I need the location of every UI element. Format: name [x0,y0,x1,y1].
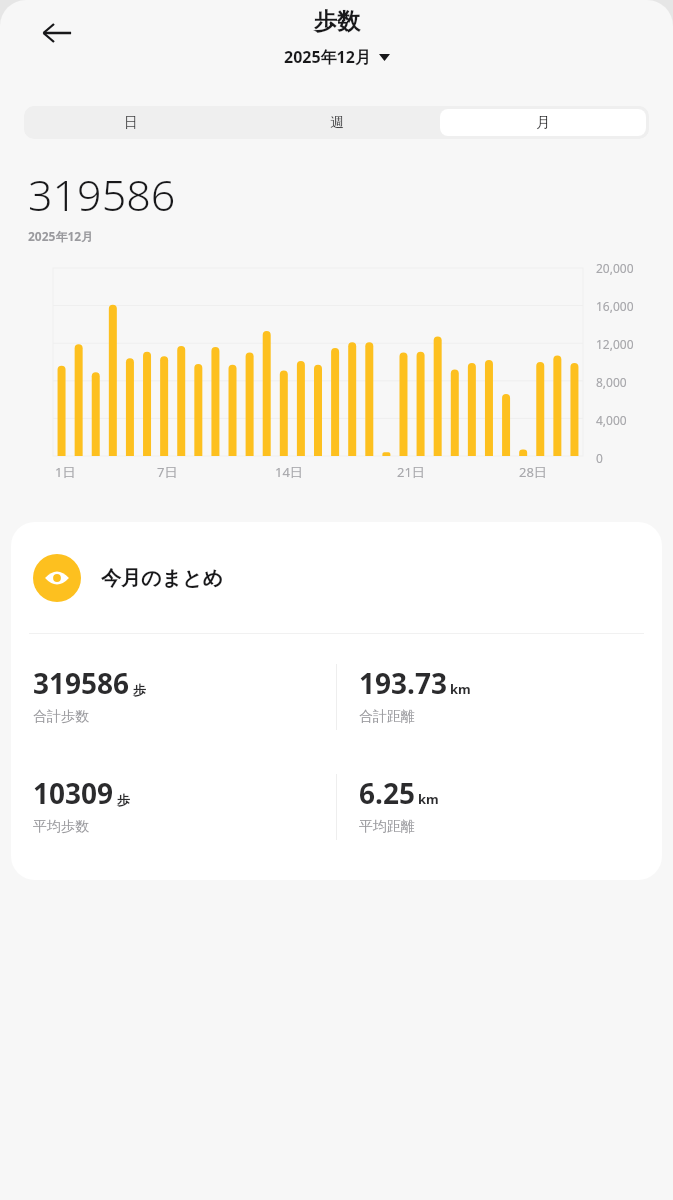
staticText: 今月のまとめ [101,566,223,591]
staticText: 歩 [117,792,130,808]
staticText: 2025年12月 [284,46,371,68]
staticText: 319586 [28,165,176,224]
staticText: 4,000 [596,412,627,428]
staticText: 1日 [55,463,76,481]
staticText: 月 [536,114,550,132]
button[interactable]: 週 [234,109,440,136]
staticText: 2025年12月 [28,228,94,244]
staticText: 14日 [275,463,303,481]
staticText: 歩数 [314,7,360,36]
staticText: 平均距離 [359,818,415,836]
button[interactable]: 日 [27,109,234,136]
staticText: 193.73 [359,664,447,702]
staticText: 10309 [33,774,114,812]
staticText: 合計距離 [359,708,415,726]
staticText: km [418,790,439,808]
staticText: 平均歩数 [33,818,89,836]
staticText: 20,000 [596,260,634,276]
staticText: 7日 [157,463,178,481]
button[interactable]: 今月のまとめ [11,522,662,880]
staticText: 週 [330,114,344,132]
staticText: 319586 [33,664,130,702]
staticText: 合計歩数 [33,708,89,726]
staticText: 歩 [133,682,146,698]
staticText: 12,000 [596,336,634,352]
button[interactable]: Back [32,8,82,58]
staticText: 28日 [519,463,547,481]
button[interactable]: 2025年12月 [278,44,396,70]
staticText: 0 [596,450,603,466]
staticText: 16,000 [596,298,634,314]
button[interactable]: 月 [440,109,646,136]
staticText: 21日 [397,463,425,481]
staticText: 日 [124,114,138,132]
staticText: km [450,680,471,698]
staticText: 6.25 [359,774,415,812]
staticText: 8,000 [596,374,627,390]
